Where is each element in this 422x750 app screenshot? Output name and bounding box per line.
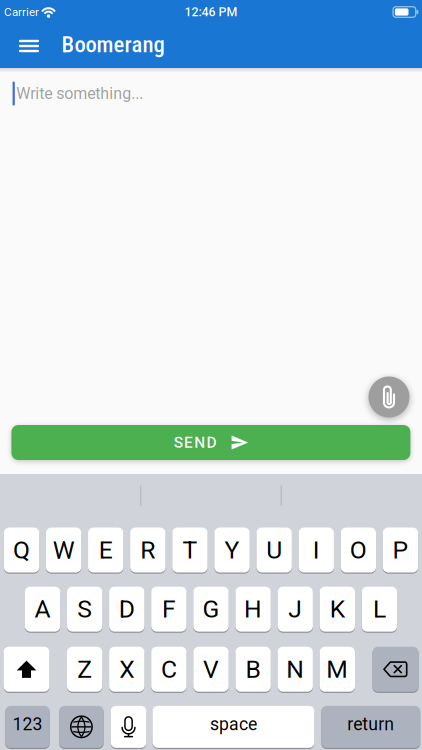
button[interactable]: I xyxy=(299,527,334,573)
staticText: J xyxy=(288,595,302,624)
button[interactable]: Numbers xyxy=(5,705,50,748)
staticText: H xyxy=(244,595,262,624)
button[interactable]: Dictate xyxy=(111,705,146,748)
staticText: I xyxy=(313,536,320,564)
button[interactable]: Send xyxy=(11,425,410,460)
button[interactable]: V xyxy=(193,646,229,692)
button[interactable]: K xyxy=(320,586,355,632)
button[interactable]: Z xyxy=(67,646,102,692)
button[interactable]: J xyxy=(277,586,313,632)
button[interactable]: R xyxy=(130,527,166,573)
staticText: A xyxy=(35,595,51,624)
button[interactable]: Delete xyxy=(372,646,418,692)
button[interactable]: E xyxy=(88,527,123,573)
button[interactable]: F xyxy=(151,586,187,632)
staticText: V xyxy=(203,655,219,684)
button[interactable]: X xyxy=(109,646,144,692)
staticText: U xyxy=(266,536,282,564)
staticText: 12:46 PM xyxy=(184,5,237,19)
staticText: X xyxy=(119,655,134,684)
staticText: M xyxy=(326,655,348,684)
staticText: E xyxy=(99,536,113,564)
button[interactable]: G xyxy=(193,586,229,632)
staticText: Boomerang xyxy=(61,31,164,58)
staticText: F xyxy=(162,595,176,624)
staticText: D xyxy=(119,595,135,624)
staticText: T xyxy=(182,536,197,564)
button[interactable]: D xyxy=(109,586,144,632)
staticText: G xyxy=(202,595,219,624)
button[interactable]: Menu xyxy=(19,39,39,53)
button[interactable]: Y xyxy=(214,527,250,573)
staticText: L xyxy=(373,595,386,624)
button[interactable]: Shift xyxy=(3,646,49,692)
button[interactable]: H xyxy=(235,586,271,632)
button[interactable]: Next keyboard xyxy=(59,705,104,748)
button[interactable]: B xyxy=(235,646,271,692)
button[interactable]: S xyxy=(67,586,102,632)
button[interactable]: P xyxy=(383,527,418,573)
staticText: Y xyxy=(225,536,240,564)
staticText: P xyxy=(392,536,408,564)
button[interactable]: N xyxy=(277,646,313,692)
button[interactable]: T xyxy=(172,527,208,573)
staticText: Q xyxy=(13,536,30,564)
button[interactable]: U xyxy=(256,527,292,573)
staticText: C xyxy=(161,655,177,684)
staticText: R xyxy=(140,536,155,564)
staticText: W xyxy=(53,536,75,564)
staticText: B xyxy=(246,655,261,684)
button[interactable]: Q xyxy=(4,527,39,573)
staticText: N xyxy=(286,655,304,684)
staticText: 123 xyxy=(12,714,42,735)
button[interactable]: L xyxy=(362,586,397,632)
staticText: S xyxy=(77,595,92,624)
button[interactable]: O xyxy=(341,527,376,573)
button[interactable]: C xyxy=(151,646,187,692)
staticText: O xyxy=(350,536,367,564)
staticText: K xyxy=(330,595,345,624)
staticText: Write something... xyxy=(16,84,143,103)
button[interactable]: M xyxy=(320,646,355,692)
staticText: SEND xyxy=(174,433,217,451)
staticText: Carrier xyxy=(4,5,39,19)
button[interactable]: Space xyxy=(152,705,314,748)
button[interactable]: W xyxy=(46,527,81,573)
button[interactable]: Attach file xyxy=(368,376,409,417)
staticText: return xyxy=(347,714,394,735)
staticText: space xyxy=(210,714,257,735)
button[interactable]: Return xyxy=(321,705,420,748)
staticText: Z xyxy=(77,655,92,684)
button[interactable]: A xyxy=(25,586,60,632)
